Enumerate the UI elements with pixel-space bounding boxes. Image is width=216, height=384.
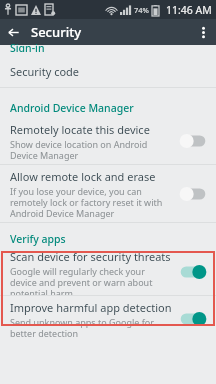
- button[interactable]: Toggle off: [178, 185, 208, 203]
- staticText: Send unknown apps to Google for better d…: [10, 316, 172, 339]
- staticText: Show device location on Android Device M…: [10, 138, 172, 161]
- button[interactable]: Allow remote lock and erase: [0, 165, 216, 222]
- staticText: Improve harmful app detection: [10, 300, 172, 315]
- button[interactable]: Improve harmful app detection: [0, 296, 216, 342]
- button[interactable]: More options: [190, 19, 216, 45]
- staticText: Verify apps: [10, 232, 66, 246]
- staticText: Android Device Manager: [10, 101, 134, 115]
- button[interactable]: Toggle on: [178, 263, 208, 281]
- button[interactable]: Toggle off: [178, 132, 208, 150]
- staticText: 11:46 AM: [166, 3, 212, 17]
- staticText: Scan device for security threats: [10, 249, 171, 264]
- staticText: Security code: [10, 64, 80, 79]
- staticText: Sign-in: [10, 41, 45, 52]
- staticText: Security: [31, 23, 81, 41]
- staticText: Remotely locate this device: [10, 122, 150, 137]
- button[interactable]: Scan device for security threats: [0, 249, 216, 295]
- button[interactable]: Security code: [0, 56, 216, 87]
- staticText: Google will regularly check your device …: [10, 265, 172, 295]
- staticText: If you lose your device, you can remotel…: [10, 185, 172, 219]
- button[interactable]: Back: [0, 19, 26, 45]
- staticText: Allow remote lock and erase: [10, 169, 156, 184]
- button[interactable]: Remotely locate this device: [0, 118, 216, 164]
- staticText: 74%: [134, 5, 149, 15]
- button[interactable]: Toggle on: [178, 310, 208, 328]
